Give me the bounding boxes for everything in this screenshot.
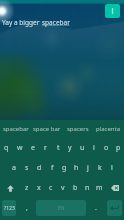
button[interactable]: b bbox=[69, 178, 81, 198]
staticText: f bbox=[51, 163, 54, 173]
staticText: m bbox=[96, 183, 103, 193]
button[interactable]: q bbox=[0, 138, 13, 158]
button[interactable]: ?123 bbox=[2, 200, 16, 216]
button[interactable]: t bbox=[52, 138, 64, 158]
staticText: w bbox=[17, 143, 23, 153]
button[interactable]: space bar bbox=[31, 120, 62, 138]
button[interactable]: placenta bbox=[93, 120, 124, 138]
staticText: b bbox=[73, 183, 78, 193]
button[interactable]: spacers bbox=[62, 120, 93, 138]
staticText: . bbox=[95, 203, 97, 213]
button[interactable]: a bbox=[7, 158, 20, 178]
staticText: a bbox=[12, 163, 16, 173]
staticText: v bbox=[61, 183, 65, 193]
button[interactable]: x bbox=[33, 178, 45, 198]
button[interactable]: w bbox=[13, 138, 26, 158]
staticText: d bbox=[37, 163, 42, 173]
staticText: r bbox=[44, 143, 47, 153]
staticText: ?123 bbox=[4, 205, 15, 212]
staticText: n bbox=[85, 183, 90, 193]
staticText: q bbox=[4, 143, 9, 153]
staticText: j bbox=[87, 163, 89, 173]
staticText: , bbox=[26, 203, 28, 213]
button[interactable]: f bbox=[46, 158, 58, 178]
button[interactable]: Shift bbox=[0, 178, 20, 198]
button[interactable]: Backspace bbox=[105, 178, 124, 198]
button[interactable]: . bbox=[86, 198, 105, 218]
staticText: c bbox=[49, 183, 53, 193]
button[interactable]: e bbox=[26, 138, 39, 158]
button[interactable]: r bbox=[39, 138, 52, 158]
staticText: s bbox=[25, 163, 29, 173]
button[interactable]: o bbox=[100, 138, 112, 158]
button[interactable]: g bbox=[58, 158, 70, 178]
button[interactable]: Enter bbox=[107, 200, 122, 216]
button[interactable]: spacebar bbox=[0, 120, 31, 138]
staticText: h bbox=[74, 163, 79, 173]
button[interactable]: , bbox=[18, 198, 36, 218]
staticText: e bbox=[31, 143, 35, 153]
button[interactable]: EN bbox=[36, 200, 86, 216]
staticText: g bbox=[62, 163, 67, 173]
button[interactable]: n bbox=[81, 178, 93, 198]
staticText: Yay a bigger bbox=[2, 18, 42, 27]
button[interactable]: v bbox=[57, 178, 69, 198]
button[interactable]: m bbox=[93, 178, 105, 198]
button[interactable]: Send bbox=[105, 4, 120, 18]
staticText: o bbox=[104, 143, 109, 153]
staticText: u bbox=[80, 143, 85, 153]
staticText: space bar bbox=[33, 125, 61, 133]
button[interactable]: d bbox=[33, 158, 46, 178]
button[interactable]: j bbox=[82, 158, 94, 178]
staticText: spacebar bbox=[3, 125, 29, 133]
button[interactable]: p bbox=[112, 138, 124, 158]
button[interactable]: z bbox=[20, 178, 33, 198]
staticText: i bbox=[93, 143, 95, 153]
button[interactable]: s bbox=[20, 158, 33, 178]
staticText: z bbox=[25, 183, 29, 193]
button[interactable]: k bbox=[94, 158, 106, 178]
staticText: p bbox=[116, 143, 121, 153]
staticText: placenta bbox=[96, 125, 121, 133]
staticText: y bbox=[68, 143, 72, 153]
button[interactable]: c bbox=[45, 178, 57, 198]
staticText: k bbox=[98, 163, 102, 173]
button[interactable]: h bbox=[70, 158, 82, 178]
staticText: spacers bbox=[67, 125, 89, 133]
staticText: x bbox=[37, 183, 41, 193]
staticText: spacebar bbox=[42, 18, 70, 27]
button[interactable]: i bbox=[88, 138, 100, 158]
button[interactable]: u bbox=[76, 138, 88, 158]
staticText: t bbox=[57, 143, 60, 153]
button[interactable]: y bbox=[64, 138, 76, 158]
staticText: EN bbox=[58, 205, 65, 212]
button[interactable]: l bbox=[106, 158, 118, 178]
staticText: l bbox=[111, 163, 113, 173]
